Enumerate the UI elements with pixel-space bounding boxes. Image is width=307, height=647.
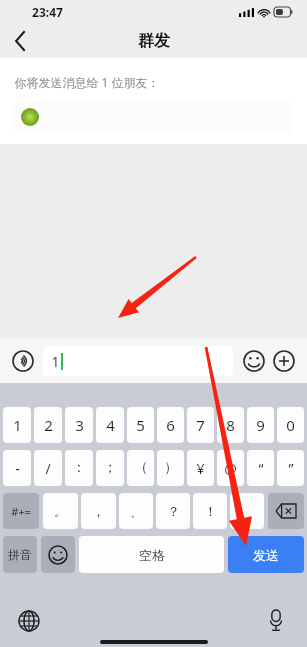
button[interactable]: More <box>269 346 299 376</box>
staticText: 。 <box>54 503 67 519</box>
button[interactable]: 空格 <box>79 536 224 573</box>
staticText: 3 <box>75 415 84 435</box>
staticText: 你将发送消息给 1 位朋友： <box>14 74 160 90</box>
staticText: #+= <box>11 504 31 519</box>
staticText: “ <box>258 459 264 478</box>
button[interactable]: ， <box>81 493 116 529</box>
button[interactable]: ？ <box>156 493 190 529</box>
staticText: 0 <box>286 415 295 435</box>
button[interactable]: Change language <box>14 606 44 636</box>
staticText: @ <box>224 459 237 478</box>
staticText: ， <box>92 503 105 519</box>
staticText: ” <box>288 459 294 478</box>
staticText: 拼音 <box>8 547 32 562</box>
button[interactable]: （ <box>127 450 154 486</box>
button[interactable]: 5 <box>127 407 154 443</box>
staticText: 、 <box>130 503 143 519</box>
button[interactable]: / <box>34 450 62 486</box>
button[interactable]: Voice dictation <box>261 606 291 636</box>
staticText: ； <box>103 459 117 477</box>
button[interactable]: 9 <box>247 407 274 443</box>
button[interactable]: 6 <box>157 407 184 443</box>
button[interactable]: 拼音 <box>3 536 37 573</box>
button[interactable]: “ <box>247 450 274 486</box>
button[interactable]: ！ <box>193 493 227 529</box>
staticText: 23:47 <box>32 4 63 20</box>
button[interactable]: ： <box>65 450 93 486</box>
button[interactable]: ¥ <box>187 450 214 486</box>
staticText: 群发 <box>138 31 170 51</box>
button[interactable]: Back <box>0 24 40 58</box>
staticText: 发送 <box>253 547 279 563</box>
button[interactable]: - <box>3 450 31 486</box>
button[interactable]: ” <box>277 450 304 486</box>
button[interactable]: 8 <box>217 407 244 443</box>
button[interactable]: #+= <box>3 493 39 529</box>
button[interactable]: Backspace <box>268 493 304 529</box>
button[interactable]: 2 <box>34 407 62 443</box>
staticText: 2 <box>44 415 53 435</box>
staticText: 空格 <box>139 547 165 563</box>
button[interactable]: Emoji <box>239 346 269 376</box>
staticText: 6 <box>166 415 175 435</box>
staticText: 9 <box>256 415 265 435</box>
button[interactable]: 1 <box>43 346 233 376</box>
button[interactable]: @ <box>217 450 244 486</box>
staticText: ： <box>72 459 86 477</box>
staticText: 5 <box>136 415 145 435</box>
button[interactable]: ） <box>157 450 184 486</box>
staticText: - <box>15 459 20 478</box>
staticText: ¥ <box>196 459 205 478</box>
staticText: （ <box>134 459 148 477</box>
button[interactable]: Emoji keyboard <box>41 536 75 573</box>
button[interactable]: ； <box>96 450 124 486</box>
staticText: 7 <box>196 415 205 435</box>
staticText: 1 <box>13 415 22 435</box>
button[interactable]: 1 <box>3 407 31 443</box>
button[interactable]: 4 <box>96 407 124 443</box>
button[interactable] <box>14 100 293 134</box>
button[interactable]: Voice input <box>8 346 38 376</box>
button[interactable]: 0 <box>277 407 304 443</box>
staticText: ） <box>164 459 178 477</box>
button[interactable]: 发送 <box>228 536 304 573</box>
staticText: / <box>45 459 51 478</box>
button[interactable]: 3 <box>65 407 93 443</box>
staticText: 1 <box>51 352 60 371</box>
staticText: ？ <box>167 503 180 519</box>
staticText: 4 <box>106 415 115 435</box>
button[interactable]: 、 <box>119 493 153 529</box>
staticText: ！ <box>204 503 217 519</box>
staticText: 8 <box>226 415 235 435</box>
button[interactable] <box>230 493 264 529</box>
button[interactable]: 。 <box>43 493 78 529</box>
button[interactable]: 7 <box>187 407 214 443</box>
